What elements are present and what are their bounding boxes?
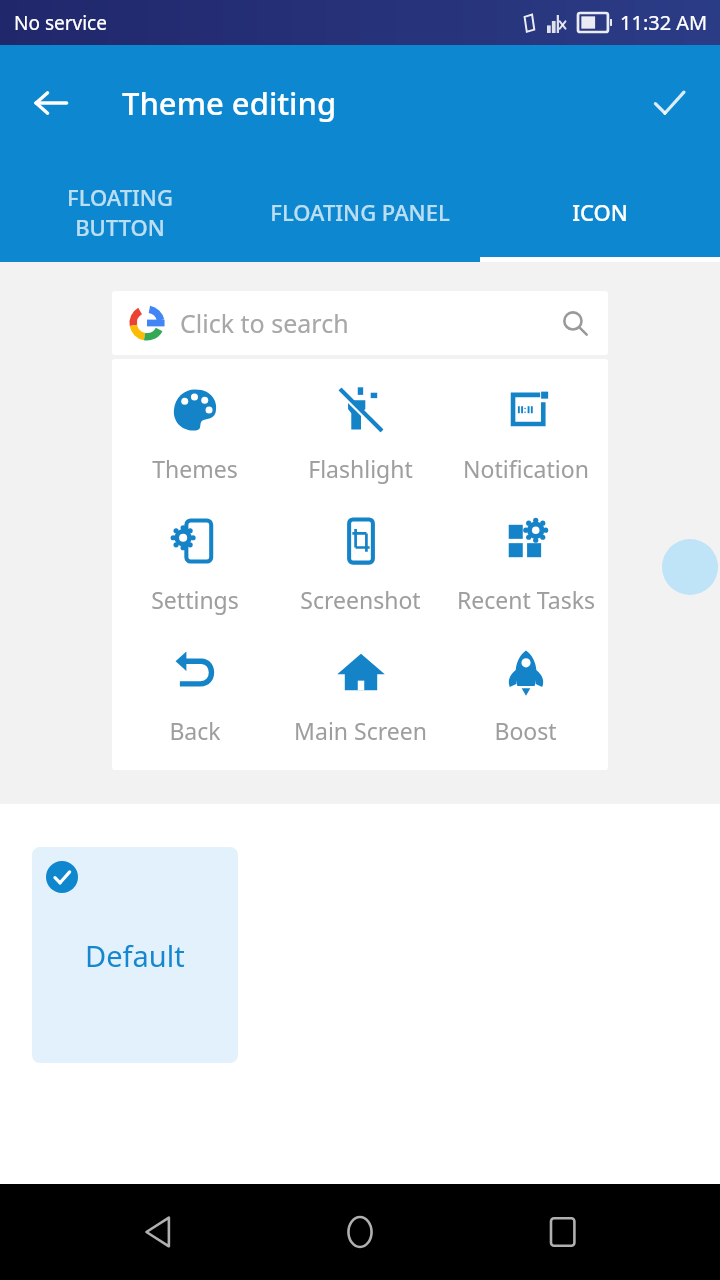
staticText: Settings	[151, 584, 239, 615]
button[interactable]: Back	[24, 76, 78, 130]
button[interactable]: Home	[315, 1187, 405, 1277]
button[interactable]: Floating button preview	[662, 539, 718, 595]
button[interactable]: Back	[113, 1187, 203, 1277]
staticText: Default	[85, 936, 185, 975]
button[interactable]: Boost	[443, 639, 608, 752]
button[interactable]: Themes	[112, 377, 278, 490]
staticText: Main Screen	[294, 715, 427, 746]
button[interactable]: FLOATING BUTTON	[0, 161, 240, 262]
staticText: FLOATING PANEL	[270, 197, 450, 227]
staticText: Screenshot	[300, 584, 421, 615]
staticText: Boost	[494, 715, 557, 746]
staticText: Notification	[463, 453, 589, 484]
button[interactable]: Click to search	[112, 291, 608, 355]
button[interactable]: Recents	[518, 1187, 608, 1277]
staticText: Theme editing	[122, 82, 337, 124]
button[interactable]: Settings	[112, 508, 278, 621]
staticText: Back	[169, 715, 221, 746]
button[interactable]: Confirm	[640, 74, 698, 132]
staticText: FLOATING BUTTON	[67, 182, 173, 242]
staticText: Recent Tasks	[457, 584, 595, 615]
button[interactable]: FLOATING PANEL	[240, 161, 480, 262]
button[interactable]: Back	[112, 639, 278, 752]
button[interactable]: Screenshot	[278, 508, 443, 621]
staticText: Click to search	[180, 306, 562, 340]
button[interactable]: Flashlight	[278, 377, 443, 490]
staticText: Themes	[152, 453, 238, 484]
button[interactable]: Recent Tasks	[443, 508, 608, 621]
staticText: ICON	[572, 197, 628, 227]
button[interactable]: Main Screen	[278, 639, 443, 752]
button[interactable]: Notification	[443, 377, 608, 490]
button[interactable]: Default	[32, 847, 238, 1063]
staticText: No service	[14, 10, 107, 36]
staticText: 11:32 AM	[620, 9, 708, 36]
button[interactable]: ICON	[480, 161, 720, 262]
staticText: Flashlight	[308, 453, 413, 484]
